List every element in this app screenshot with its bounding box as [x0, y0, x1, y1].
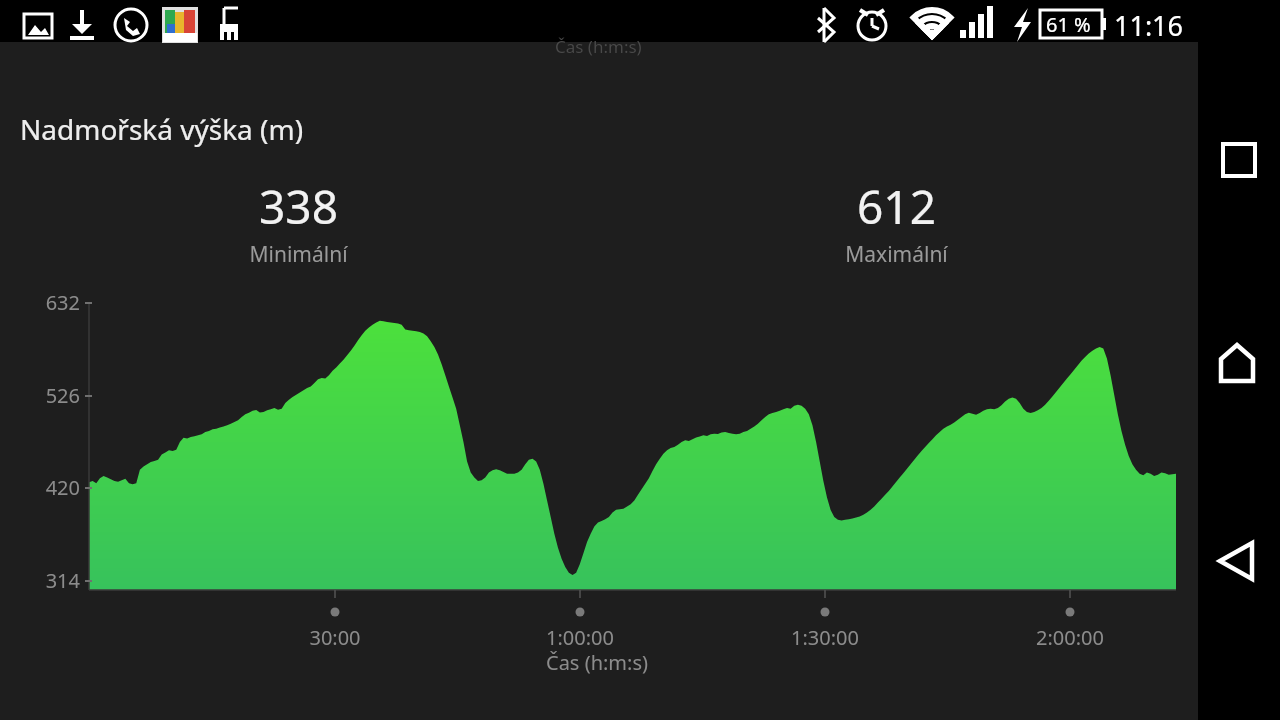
button[interactable]: Home [1205, 330, 1269, 394]
staticText: 1:00:00 [546, 624, 614, 651]
staticText: Čas (h:m:s) [555, 35, 642, 58]
button[interactable]: 338 [188, 175, 408, 267]
staticText: 11:16 [1114, 7, 1184, 44]
staticText: 2:00:00 [1036, 624, 1104, 651]
staticText: 314 [45, 567, 80, 594]
button[interactable]: Back [1205, 528, 1269, 592]
staticText: 612 [857, 175, 936, 238]
staticText: 420 [45, 474, 80, 501]
staticText: Nadmořská výška (m) [20, 110, 304, 148]
staticText: 526 [45, 382, 80, 409]
button[interactable]: 612 [786, 175, 1006, 267]
button[interactable]: Recent apps [1205, 128, 1269, 192]
staticText: Čas (h:m:s) [546, 649, 648, 676]
staticText: 338 [259, 175, 338, 238]
staticText: Maximální [845, 240, 948, 269]
staticText: 632 [45, 289, 80, 316]
staticText: 1:30:00 [791, 624, 859, 651]
staticText: Minimální [249, 240, 348, 269]
staticText: 30:00 [309, 624, 361, 651]
staticText: 61 % [1046, 11, 1091, 38]
